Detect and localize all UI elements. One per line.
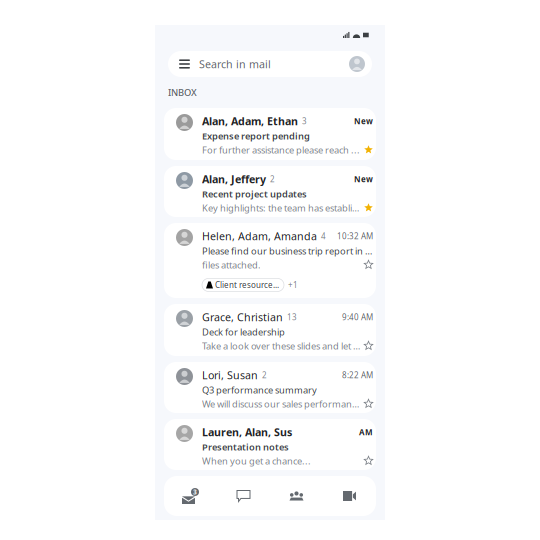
button[interactable]: Alan, Adam, Ethan (155, 108, 385, 166)
staticText: For further assistance please reach ... (202, 144, 360, 156)
staticText: Alan, Jeffery (202, 172, 266, 186)
staticText: 2 (258, 370, 267, 380)
staticText: 3 (193, 488, 197, 496)
staticText: Recent project updates (202, 188, 307, 200)
button[interactable]: Mail (164, 476, 217, 516)
staticText: Presentation notes (202, 441, 289, 453)
staticText: We will discuss our sales performance (202, 398, 360, 410)
staticText: INBOX (168, 86, 197, 99)
button[interactable]: Alan, Jeffery (155, 166, 385, 223)
button[interactable]: Lori, Susan (155, 362, 385, 419)
staticText: Expense report pending (202, 130, 310, 142)
staticText: AM (359, 427, 373, 437)
button[interactable]: Search in mail (155, 49, 385, 77)
staticText: New (354, 174, 373, 184)
staticText: files attached. (202, 259, 261, 271)
staticText: Take a look over these slides and let ..… (202, 340, 360, 352)
staticText: Alan, Adam, Ethan (202, 114, 298, 128)
staticText: 2 (266, 174, 275, 184)
staticText: 8:22 AM (342, 370, 373, 380)
staticText: Deck for leadership (202, 326, 285, 338)
staticText: 4 (317, 231, 326, 241)
staticText: Helen, Adam, Amanda (202, 229, 317, 243)
staticText: 10:32 AM (337, 231, 373, 241)
staticText: Grace, Christian (202, 310, 283, 324)
staticText: Q3 performance summary (202, 384, 317, 396)
staticText: Search in mail (199, 57, 271, 71)
staticText: New (354, 116, 373, 126)
staticText: +1 (284, 280, 298, 290)
button[interactable]: Lauren, Alan, Sus (155, 419, 385, 476)
staticText: Key highlights: the team has establis... (202, 202, 360, 214)
button[interactable]: Spaces (270, 476, 323, 516)
staticText: When you get a chance... (202, 455, 311, 467)
staticText: Lori, Susan (202, 368, 258, 382)
button[interactable]: Chat (217, 476, 270, 516)
button[interactable]: Meet (323, 476, 376, 516)
button[interactable]: Grace, Christian (155, 304, 385, 362)
staticText: Client resource... (213, 280, 279, 290)
staticText: Lauren, Alan, Sus (202, 425, 292, 439)
button[interactable]: Helen, Adam, Amanda (155, 223, 385, 304)
staticText: 13 (283, 312, 297, 322)
staticText: Please find our business trip report in … (202, 245, 373, 257)
staticText: 3 (298, 116, 307, 126)
staticText: 9:40 AM (342, 312, 373, 322)
